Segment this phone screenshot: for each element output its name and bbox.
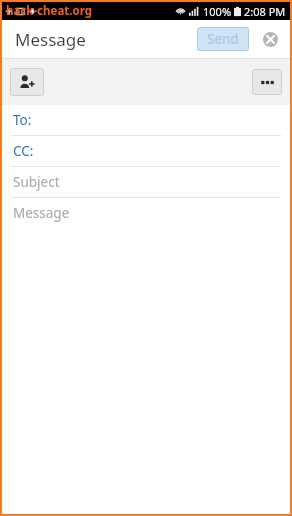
button[interactable]: Send <box>197 27 249 51</box>
staticText: Subject <box>13 173 60 191</box>
staticText: Message <box>13 204 70 222</box>
staticText: To: <box>13 111 32 129</box>
staticText: Message <box>15 28 86 51</box>
button[interactable]: Subject <box>2 167 290 197</box>
staticText: 2:08 PM <box>244 4 286 19</box>
staticText: CC: <box>13 142 34 160</box>
button[interactable]: Message <box>2 198 290 228</box>
button[interactable]: More options <box>252 69 282 95</box>
button[interactable]: CC: <box>2 136 290 166</box>
button[interactable]: Add recipient <box>10 68 44 96</box>
staticText: Send <box>207 30 239 48</box>
staticText: 100% <box>203 4 232 19</box>
button[interactable]: Discard message <box>258 27 282 51</box>
button[interactable]: To: <box>2 105 290 135</box>
staticText: hack-cheat.org <box>6 3 92 19</box>
